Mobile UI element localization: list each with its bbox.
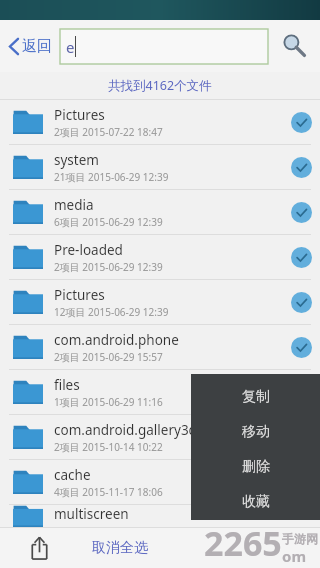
button[interactable]: 分享 [0, 527, 78, 568]
button[interactable]: 选中 [282, 370, 320, 414]
staticText: 1项目 2015-06-29 11:16 [54, 395, 163, 409]
staticText: cache [54, 466, 91, 484]
button[interactable]: 搜索 [268, 20, 320, 72]
button[interactable]: 取消全选 [78, 527, 320, 568]
staticText: 共找到4162个文件 [108, 77, 212, 94]
staticText: 12项目 2015-06-29 12:39 [54, 305, 169, 319]
button[interactable]: 选中 [282, 505, 320, 527]
staticText: 2265 [204, 520, 282, 566]
button[interactable]: 复制 [191, 379, 320, 414]
staticText: multiscreen [54, 505, 129, 523]
button[interactable]: Pictures [0, 280, 320, 324]
staticText: 复制 [242, 388, 270, 406]
button[interactable]: system [0, 145, 320, 189]
staticText: 收藏 [242, 493, 270, 511]
button[interactable]: cache [0, 460, 320, 504]
staticText: 6项目 2015-06-29 12:39 [54, 215, 163, 229]
staticText: 2项目 2015-06-29 12:39 [54, 260, 163, 274]
button[interactable]: Pictures [0, 100, 320, 144]
button[interactable]: 删除 [191, 449, 320, 484]
button[interactable]: com.android.phone [0, 325, 320, 369]
staticText: 取消全选 [92, 539, 148, 557]
staticText: 返回 [22, 37, 52, 56]
staticText: Pre-loaded [54, 241, 123, 259]
button[interactable]: Pre-loaded [0, 235, 320, 279]
staticText: 移动 [242, 423, 270, 441]
staticText: system [54, 151, 99, 169]
button[interactable]: e [60, 29, 268, 64]
button[interactable]: 选中 [282, 235, 320, 279]
button[interactable]: 返回 [0, 20, 60, 72]
staticText: 2项目 2015-10-14 10:22 [54, 440, 163, 454]
button[interactable]: 选中 [282, 100, 320, 144]
staticText: com.android.phone [54, 331, 179, 349]
staticText: 4项目 2015-11-17 18:06 [54, 485, 163, 499]
button[interactable]: 选中 [282, 145, 320, 189]
staticText: files [54, 376, 80, 394]
button[interactable]: 选中 [282, 190, 320, 234]
button[interactable]: 收藏 [191, 484, 320, 519]
staticText: com.android.gallery3d [54, 421, 197, 439]
staticText: media [54, 196, 94, 214]
button[interactable]: com.android.gallery3d [0, 415, 320, 459]
staticText: 删除 [242, 458, 270, 476]
button[interactable]: 移动 [191, 414, 320, 449]
button[interactable]: 选中 [282, 280, 320, 324]
button[interactable]: multiscreen [0, 505, 320, 527]
staticText: 2项目 2015-07-22 18:47 [54, 125, 163, 139]
staticText: 手游网 [282, 531, 318, 546]
button[interactable]: files [0, 370, 320, 414]
staticText: Pictures [54, 106, 105, 124]
staticText: om [282, 546, 307, 566]
button[interactable]: 选中 [282, 325, 320, 369]
staticText: e [66, 37, 75, 57]
staticText: 21项目 2015-06-29 12:39 [54, 170, 169, 184]
staticText: 2项目 2015-06-29 15:57 [54, 350, 163, 364]
staticText: Pictures [54, 286, 105, 304]
button[interactable]: media [0, 190, 320, 234]
